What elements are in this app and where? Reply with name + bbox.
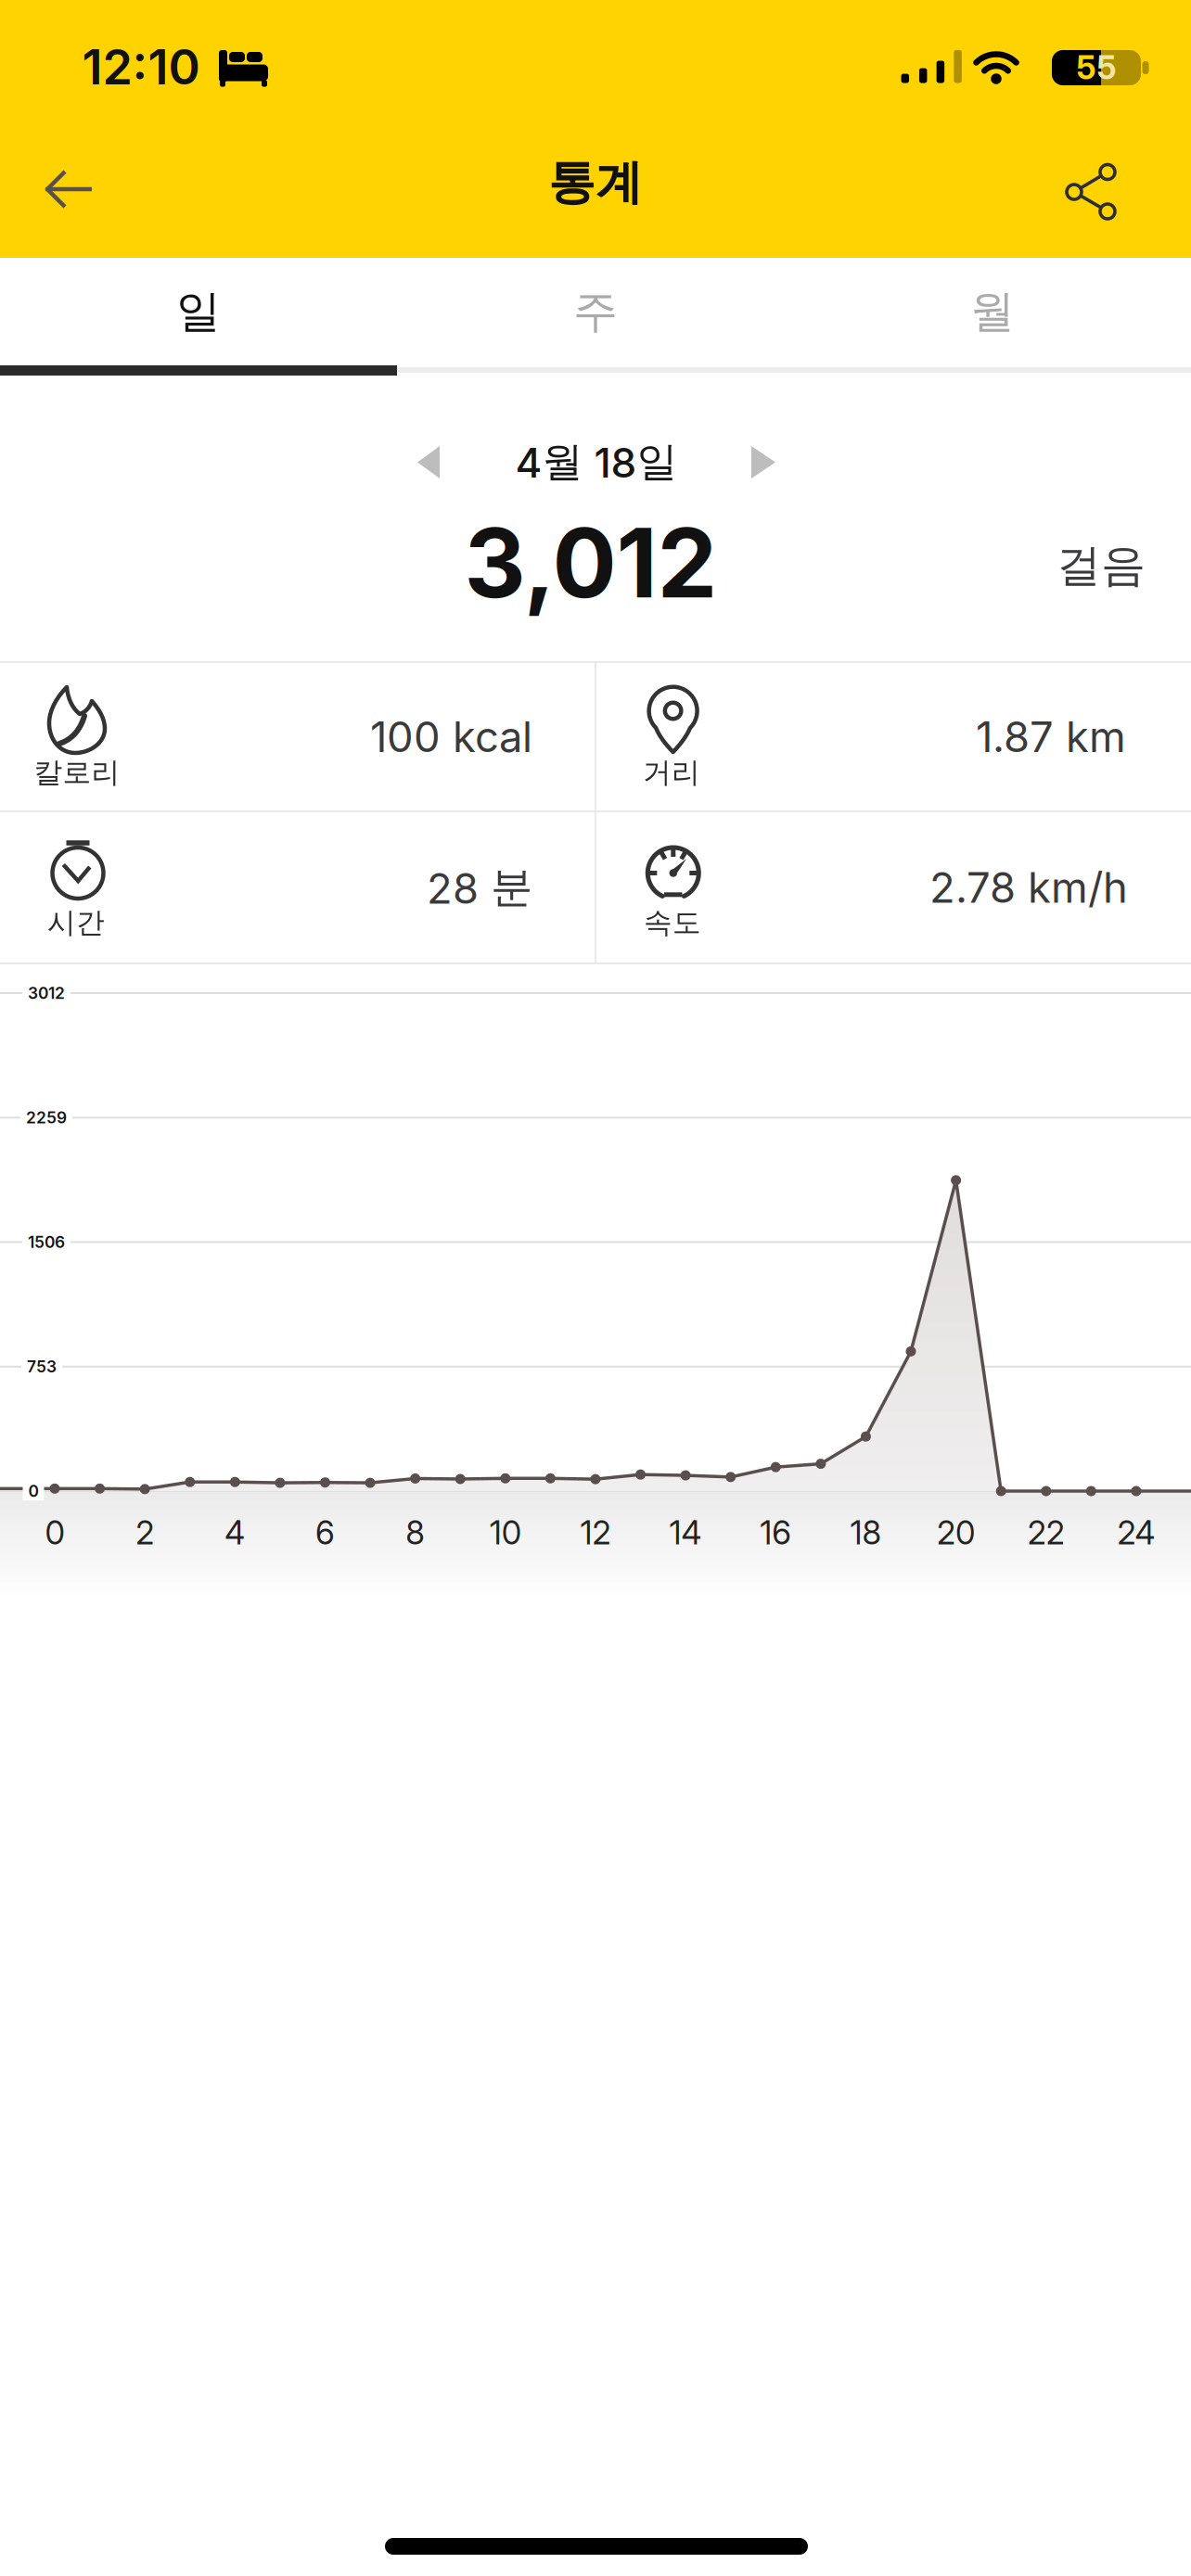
staticText: 4 <box>225 1514 245 1552</box>
button[interactable]: 주 <box>397 257 794 366</box>
staticText: 칼로리 <box>34 755 120 790</box>
staticText: 1506 <box>28 1233 65 1252</box>
staticText: 2.78 km/h <box>929 863 1128 912</box>
staticText: 2 <box>136 1514 154 1552</box>
staticText: 16 <box>760 1514 791 1552</box>
staticText: 24 <box>1117 1514 1155 1552</box>
staticText: 22 <box>1028 1514 1065 1552</box>
staticText: 0 <box>45 1514 64 1552</box>
staticText: 거리 <box>643 755 700 790</box>
staticText: 3,012 <box>464 507 717 619</box>
staticText: 0 <box>28 1482 38 1501</box>
staticText: 4월 18일 <box>515 437 678 487</box>
staticText: 14 <box>669 1514 702 1552</box>
staticText: 18 <box>850 1514 882 1552</box>
button[interactable]: 일 <box>0 257 397 366</box>
staticText: 1.87 km <box>976 712 1126 762</box>
staticText: 12:10 <box>82 38 200 95</box>
staticText: 일 <box>176 284 221 339</box>
staticText: 6 <box>315 1514 335 1552</box>
staticText: 753 <box>27 1357 57 1376</box>
staticText: 5 <box>1076 49 1096 87</box>
button[interactable]: 다음 날짜 <box>731 430 796 495</box>
staticText: 걸음 <box>1057 538 1146 593</box>
staticText: 속도 <box>644 905 701 940</box>
staticText: 시간 <box>47 905 105 940</box>
staticText: 2259 <box>26 1108 67 1127</box>
staticText: 28 분 <box>427 862 532 913</box>
staticText: 100 kcal <box>370 712 532 762</box>
button[interactable]: 이전 날짜 <box>396 430 461 495</box>
staticText: 12 <box>580 1514 611 1552</box>
staticText: 주 <box>573 284 618 339</box>
button[interactable]: 공유 <box>1044 145 1137 237</box>
button[interactable]: 월 <box>794 257 1191 366</box>
button[interactable]: 뒤로 <box>22 143 115 236</box>
staticText: 3012 <box>28 984 65 1003</box>
staticText: 10 <box>490 1514 521 1552</box>
staticText: 20 <box>937 1514 975 1552</box>
staticText: 5 <box>1097 49 1116 87</box>
staticText: 월 <box>970 284 1015 339</box>
staticText: 통계 <box>548 154 643 212</box>
staticText: 8 <box>405 1514 425 1552</box>
